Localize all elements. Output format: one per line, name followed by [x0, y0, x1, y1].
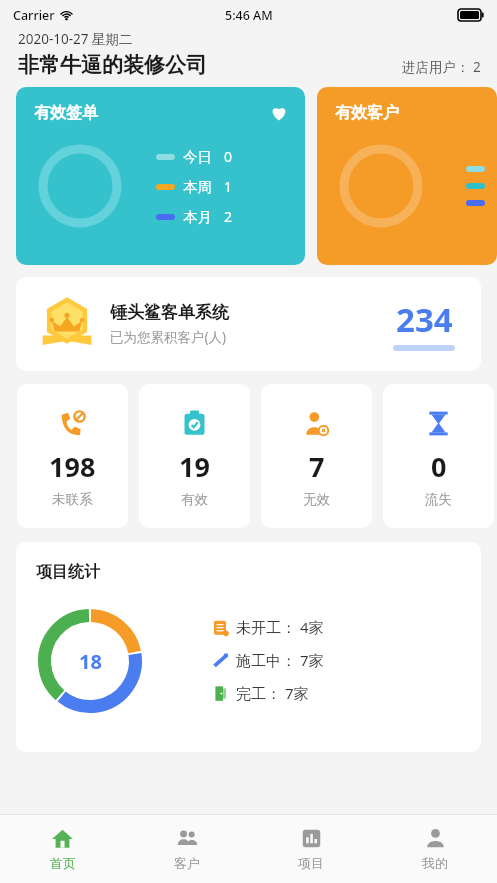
- staticText: 我的: [422, 855, 448, 871]
- button[interactable]: 锤头鲨客单系统: [16, 277, 481, 371]
- staticText: 项目: [298, 855, 324, 871]
- staticText: 0: [431, 448, 447, 485]
- button[interactable]: 198: [17, 384, 128, 528]
- staticText: 有效客户: [335, 103, 399, 123]
- staticText: 7: [309, 448, 325, 485]
- staticText: 今日: [183, 148, 212, 166]
- staticText: 流失: [425, 491, 452, 508]
- staticText: 18: [79, 648, 102, 675]
- staticText: 项目统计: [36, 562, 100, 582]
- button[interactable]: 有效签单: [16, 87, 305, 265]
- staticText: 未联系: [52, 491, 93, 508]
- button[interactable]: 19: [139, 384, 250, 528]
- staticText: 首页: [50, 855, 76, 871]
- staticText: 234: [396, 297, 453, 342]
- staticText: 无效: [303, 491, 330, 508]
- staticText: 非常牛逼的装修公司: [18, 52, 207, 78]
- staticText: 未开工： 4家: [236, 617, 324, 637]
- staticText: 19: [179, 448, 210, 485]
- staticText: 有效: [181, 491, 208, 508]
- staticText: 已为您累积客户(人): [110, 328, 227, 346]
- staticText: 0: [224, 147, 233, 166]
- button[interactable]: 有效客户: [317, 87, 497, 265]
- staticText: 施工中： 7家: [236, 650, 324, 670]
- button[interactable]: 客户: [125, 815, 249, 883]
- staticText: 本周: [183, 178, 212, 196]
- staticText: 本月: [183, 208, 212, 226]
- staticText: 5:46 AM: [225, 7, 273, 24]
- staticText: 2020-10-27 星期二: [18, 30, 133, 48]
- staticText: 完工： 7家: [236, 683, 309, 703]
- button[interactable]: 项目: [249, 815, 373, 883]
- staticText: 进店用户： 2: [402, 58, 481, 76]
- staticText: Carrier: [13, 7, 55, 24]
- button[interactable]: 我的: [373, 815, 497, 883]
- staticText: 客户: [174, 855, 200, 871]
- staticText: 2: [224, 207, 233, 226]
- button[interactable]: 首页: [0, 815, 125, 883]
- staticText: 有效签单: [34, 103, 98, 123]
- staticText: 锤头鲨客单系统: [110, 302, 229, 323]
- button[interactable]: 0: [383, 384, 494, 528]
- button[interactable]: 7: [261, 384, 372, 528]
- staticText: 1: [224, 177, 233, 196]
- staticText: 198: [49, 448, 96, 485]
